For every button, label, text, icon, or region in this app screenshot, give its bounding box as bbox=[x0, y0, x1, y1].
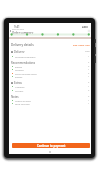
button[interactable]: Recommendations bbox=[11, 61, 90, 64]
button[interactable]: Extras bbox=[11, 81, 90, 84]
button[interactable]: Ring the bell bbox=[11, 102, 90, 105]
staticText: Edit order info bbox=[73, 43, 90, 46]
button[interactable]: Delivery bbox=[11, 50, 90, 53]
staticText: Extras bbox=[14, 81, 22, 84]
staticText: Back to store bbox=[12, 28, 25, 31]
staticText: 1 bbox=[88, 102, 90, 105]
button[interactable]: Bread bbox=[11, 65, 90, 68]
staticText: Delivery details bbox=[11, 43, 34, 47]
staticText: Free bbox=[85, 50, 90, 53]
staticText: Recommendations bbox=[11, 61, 36, 64]
button[interactable]: Edit order info bbox=[73, 43, 90, 46]
staticText: 2 bbox=[88, 89, 90, 92]
staticText: Leave at door bbox=[15, 99, 32, 102]
staticText: 2 bbox=[88, 65, 90, 68]
staticText: Ring the bell bbox=[15, 102, 30, 105]
staticText: Order summary bbox=[12, 31, 34, 35]
staticText: Cheese bbox=[15, 68, 24, 71]
button[interactable]: Cutlery bbox=[11, 89, 90, 92]
staticText: Continue to payment bbox=[37, 144, 66, 148]
staticText: Notes bbox=[11, 95, 19, 98]
staticText: Fresh orange juice bbox=[15, 72, 37, 75]
staticText: 4 bbox=[88, 61, 90, 64]
staticText: Butter bbox=[15, 75, 23, 78]
staticText: 1 bbox=[88, 55, 90, 58]
staticText: 9:41 bbox=[14, 25, 20, 28]
staticText: Napkins bbox=[15, 85, 25, 88]
staticText: 1 bbox=[88, 68, 90, 71]
button[interactable]: Standard delivery bbox=[11, 55, 90, 58]
staticText: Delivery bbox=[14, 50, 25, 53]
button[interactable]: Napkins bbox=[11, 85, 90, 88]
button[interactable]: Help bbox=[87, 29, 91, 33]
staticText: 2 bbox=[88, 95, 90, 98]
button[interactable]: Leave at door bbox=[11, 99, 90, 102]
staticText: 1 bbox=[88, 75, 90, 78]
button[interactable]: Notes bbox=[11, 95, 90, 98]
button[interactable]: Fresh orange juice bbox=[11, 72, 90, 75]
staticText: Bread bbox=[15, 65, 22, 68]
staticText: 2 bbox=[88, 81, 90, 84]
button[interactable]: Butter bbox=[11, 75, 90, 78]
staticText: Standard delivery bbox=[15, 55, 36, 58]
button[interactable]: Back bbox=[9, 29, 12, 32]
staticText: 1 bbox=[88, 85, 90, 88]
button[interactable]: Continue to payment bbox=[12, 143, 90, 148]
button[interactable]: Cheese bbox=[11, 68, 90, 71]
staticText: 1 bbox=[88, 99, 90, 102]
staticText: 3 bbox=[88, 72, 90, 75]
staticText: Cutlery bbox=[15, 89, 24, 92]
